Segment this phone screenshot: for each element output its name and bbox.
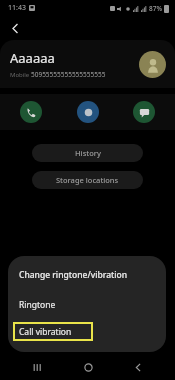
staticText: 50955555555555555555 — [31, 70, 106, 79]
button[interactable]: Ringtone — [8, 297, 166, 313]
button[interactable]: Call vibration — [13, 322, 93, 341]
staticText: Storage locations — [56, 175, 119, 185]
staticText: Call vibration — [19, 326, 72, 338]
button[interactable]: Recent apps — [24, 354, 50, 380]
button[interactable]: Storage locations — [32, 171, 143, 189]
staticText: Mobile — [10, 71, 31, 79]
staticText: History — [75, 148, 101, 158]
staticText: 87% — [149, 4, 162, 13]
button[interactable]: Home — [75, 354, 101, 380]
button[interactable]: Message — [133, 101, 155, 123]
button[interactable]: Contact photo — [139, 51, 166, 78]
button[interactable]: Back — [125, 354, 151, 380]
staticText: Ringtone — [19, 299, 56, 311]
button[interactable]: Back — [4, 17, 26, 39]
button[interactable]: Call — [20, 101, 42, 123]
button[interactable]: History — [32, 144, 143, 162]
staticText: 11:43 — [8, 3, 26, 13]
staticText: Aaaaaa — [10, 49, 55, 67]
staticText: Change ringtone/vibration — [19, 269, 128, 281]
button[interactable]: Aaaaaa — [0, 40, 175, 88]
button[interactable]: Video call — [77, 101, 99, 123]
